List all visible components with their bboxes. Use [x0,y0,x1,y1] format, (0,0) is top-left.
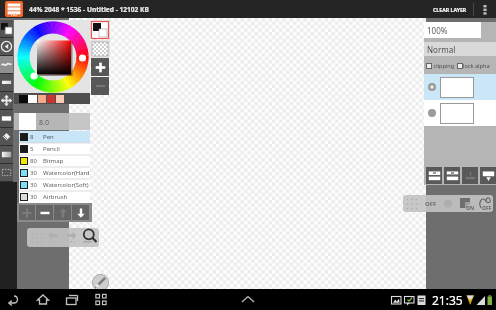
staticText: OFF [425,200,437,208]
button[interactable]: Merge layer [462,167,478,184]
button[interactable]: Fill [0,128,13,145]
button[interactable]: Colors [0,20,13,37]
staticText: Normal [427,44,456,55]
staticText: 8.0 [39,118,49,128]
button[interactable]: Normal [424,42,496,56]
staticText: 30 [30,193,43,201]
staticText: 5 [30,145,43,153]
staticText: OFF [482,205,492,212]
button[interactable]: Home [32,289,54,310]
button[interactable]: Move up [54,205,71,220]
button[interactable]: Brush size [14,113,90,130]
button[interactable]: Opacity [424,22,481,38]
button[interactable]: Menu [5,1,23,17]
button[interactable]: Eraser [0,74,13,91]
button[interactable]: Undo redo toolbar [27,228,99,247]
staticText: lock alpha [463,62,490,70]
staticText: Pen [43,133,54,141]
button[interactable]: Eyedropper [92,274,109,291]
button[interactable]: Back [2,289,24,310]
button[interactable]: 8 [19,131,90,143]
button[interactable]: Brush [0,56,13,73]
button[interactable]: Add color [91,58,109,76]
button[interactable]: 5 [19,143,90,155]
button[interactable]: Move [0,92,13,109]
button[interactable]: More options [474,0,496,18]
button[interactable]: Move down [72,205,89,220]
button[interactable]: 30 [19,179,90,191]
button[interactable]: Stabilizer toolbar [403,195,493,212]
button[interactable]: lock alpha [457,62,490,70]
button[interactable]: Select [0,164,13,181]
button[interactable]: clipping [424,62,455,70]
button[interactable]: Layer [424,100,496,126]
button[interactable]: Expand [236,289,260,310]
button[interactable]: Layer [424,74,496,100]
button[interactable]: 80 [19,155,90,167]
button[interactable]: Duplicate layer [444,167,460,184]
staticText: Airbrush [43,193,68,201]
button[interactable]: 30 [19,167,90,179]
button[interactable]: Remove color [91,77,109,95]
staticText: 21:35 [432,292,463,308]
staticText: 80 [30,157,43,165]
button[interactable]: Add layer [426,167,442,184]
button[interactable]: Undo [0,38,13,55]
staticText: 100% [427,25,448,36]
button[interactable]: Remove brush [36,205,53,220]
staticText: Bitmap [43,157,64,165]
button[interactable]: Recents [61,289,83,310]
staticText: Watercolor(Soft) [43,181,89,189]
button[interactable]: Add brush [19,205,35,220]
staticText: 30 [30,169,43,177]
staticText: Pencil [43,145,60,153]
staticText: redo [66,239,75,244]
button[interactable]: 30 [19,191,90,203]
staticText: HD [11,12,17,17]
button[interactable]: Delete layer [480,167,496,184]
staticText: CLEAR LAYER [433,6,467,13]
button[interactable]: Gradient [0,146,13,163]
button[interactable]: CLEAR LAYER [427,3,473,16]
staticText: clipping [432,62,455,70]
staticText: 30 [30,181,43,189]
staticText: Watercolor(Hard) [43,169,90,177]
staticText: ON [466,205,475,212]
staticText: 44% 2048 * 1536 - Untitled - 12102 KB [29,5,149,14]
button[interactable]: Screenshot [90,289,112,310]
staticText: 8 [30,133,43,141]
button[interactable]: Shape [0,110,13,127]
staticText: clear [83,239,93,244]
